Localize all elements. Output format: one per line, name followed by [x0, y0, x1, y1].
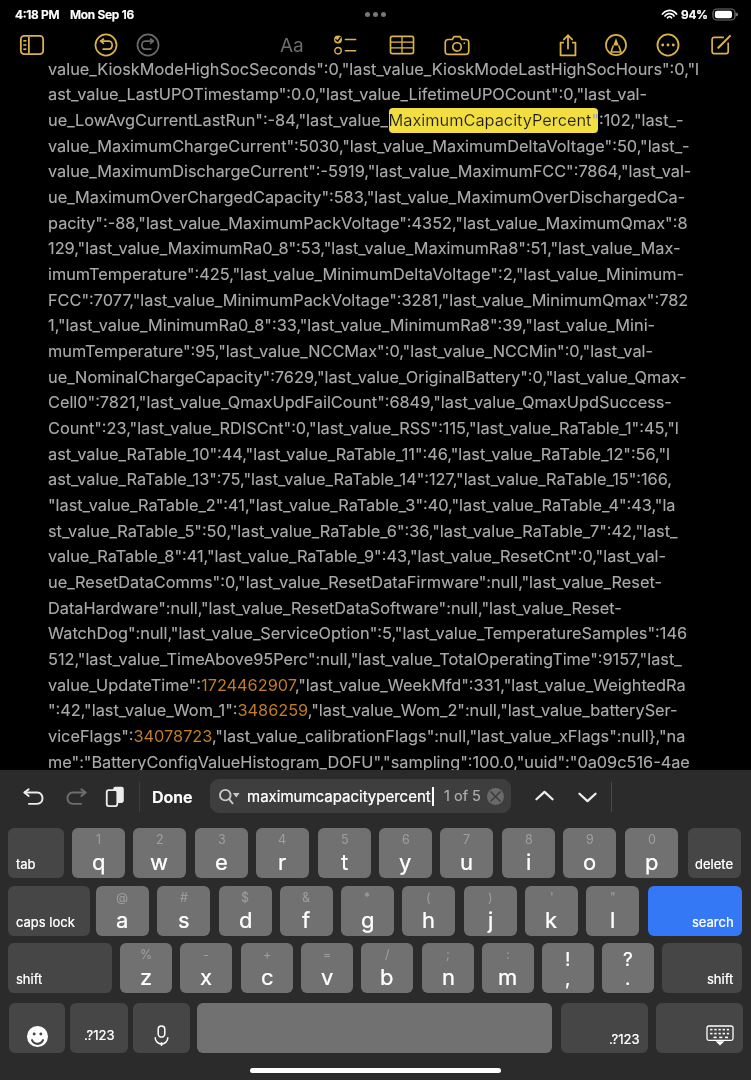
- staticText: k: [545, 907, 558, 934]
- button[interactable]: 2: [133, 828, 186, 878]
- staticText: %: [140, 947, 153, 962]
- button[interactable]: 0: [625, 828, 678, 878]
- staticText: Mon Sep 16: [70, 7, 134, 22]
- staticText: search: [692, 914, 734, 930]
- button[interactable]: maximumcapacitypercent: [210, 779, 511, 813]
- button[interactable]: 1: [72, 828, 125, 878]
- staticText: .: [625, 967, 631, 990]
- button[interactable]: /: [361, 943, 413, 993]
- button[interactable]: .?123: [70, 1003, 128, 1053]
- button[interactable]: kb: [656, 1003, 743, 1053]
- staticText: 0: [648, 832, 656, 847]
- button[interactable]: +: [241, 943, 293, 993]
- staticText: 1,"last_value_MinimumRa0_8":33,"last_val…: [48, 315, 656, 335]
- button[interactable]: 7: [440, 828, 493, 878]
- button[interactable]: More: [651, 28, 685, 62]
- button[interactable]: Format: [274, 29, 310, 61]
- staticText: Aa: [280, 34, 304, 57]
- button[interactable]: mic: [133, 1003, 190, 1053]
- staticText: value_MaximumChargeCurrent":5030,"last_v…: [48, 136, 690, 156]
- staticText: mumTemperature":95,"last_value_NCCMax":0…: [48, 341, 654, 361]
- button[interactable]: delete: [688, 828, 741, 878]
- button[interactable]: ": [586, 886, 639, 936]
- staticText: 6: [402, 832, 410, 847]
- button[interactable]: ?: [602, 943, 654, 993]
- button[interactable]: Done: [146, 780, 198, 812]
- button[interactable]: caps lock: [8, 886, 90, 936]
- staticText: ,: [565, 967, 571, 990]
- staticText: d: [239, 907, 253, 934]
- button[interactable]: !: [542, 943, 594, 993]
- button[interactable]: ;: [422, 943, 474, 993]
- button[interactable]: %: [120, 943, 172, 993]
- button[interactable]: Clear search: [487, 788, 504, 805]
- staticText: :: [506, 947, 510, 962]
- staticText: s: [178, 907, 190, 934]
- staticText: (: [426, 890, 431, 905]
- button[interactable]: 6: [379, 828, 432, 878]
- button[interactable]: Redo: [131, 28, 165, 62]
- staticText: ue_MaximumOverChargedCapacity":583,"last…: [48, 187, 686, 207]
- staticText: ;: [446, 947, 450, 962]
- button[interactable]: $: [219, 886, 272, 936]
- staticText: 1 of 5: [444, 787, 481, 805]
- staticText: -: [203, 947, 209, 962]
- button[interactable]: *: [341, 886, 394, 936]
- button[interactable]: Markup: [599, 28, 633, 62]
- button[interactable]: Undo: [16, 779, 50, 813]
- button[interactable]: Table: [385, 28, 419, 62]
- button[interactable]: tab: [8, 828, 64, 878]
- staticText: @: [116, 890, 129, 905]
- button[interactable]: =: [301, 943, 353, 993]
- staticText: =: [323, 947, 332, 962]
- staticText: pacity":-88,"last_value_MaximumPackVolta…: [48, 213, 688, 233]
- button[interactable]: 5: [318, 828, 371, 878]
- staticText: ": [610, 890, 616, 905]
- button[interactable]: ': [525, 886, 578, 936]
- staticText: 94%: [681, 7, 708, 22]
- staticText: ue_LowAvgCurrentLastRun":-84,"last_value…: [48, 110, 684, 130]
- staticText: shift: [707, 971, 734, 987]
- staticText: g: [361, 907, 375, 934]
- button[interactable]: 8: [502, 828, 555, 878]
- button[interactable]: shift: [662, 943, 742, 993]
- staticText: viceFlags":34078723,"last_value_calibrat…: [48, 726, 686, 746]
- button[interactable]: search: [648, 886, 742, 936]
- staticText: a: [116, 907, 129, 934]
- button[interactable]: shift: [8, 943, 112, 993]
- button[interactable]: 9: [563, 828, 616, 878]
- staticText: 3: [218, 832, 226, 847]
- staticText: Count":23,"last_value_RDISCnt":0,"last_v…: [48, 418, 679, 438]
- staticText: m: [498, 964, 518, 991]
- button[interactable]: :: [482, 943, 534, 993]
- button[interactable]: Paste: [98, 779, 132, 813]
- button[interactable]: Sidebar: [15, 28, 49, 62]
- button[interactable]: Share: [551, 28, 585, 62]
- staticText: delete: [695, 856, 733, 872]
- button[interactable]: emoji: [9, 1003, 65, 1053]
- button[interactable]: Checklist: [328, 28, 362, 62]
- button[interactable]: Redo: [59, 779, 93, 813]
- button[interactable]: #: [157, 886, 210, 936]
- button[interactable]: &: [280, 886, 333, 936]
- button[interactable]: .?123: [561, 1003, 648, 1053]
- staticText: 2: [156, 832, 164, 847]
- button[interactable]: Previous result: [527, 779, 561, 813]
- button[interactable]: 4: [256, 828, 309, 878]
- button[interactable]: -: [180, 943, 232, 993]
- button[interactable]: @: [96, 886, 149, 936]
- staticText: ast_value_LastUPOTimestamp":0.0,"last_va…: [48, 84, 647, 104]
- staticText: ): [488, 890, 493, 905]
- button[interactable]: Camera: [440, 28, 474, 62]
- button[interactable]: 3: [195, 828, 248, 878]
- button[interactable]: (: [402, 886, 455, 936]
- staticText: 1: [96, 832, 102, 847]
- button[interactable]: Compose: [704, 28, 738, 62]
- button[interactable]: Next result: [570, 779, 604, 813]
- button[interactable]: ): [464, 886, 517, 936]
- staticText: 9: [586, 832, 594, 847]
- staticText: $: [241, 890, 250, 905]
- staticText: &: [302, 890, 311, 905]
- button[interactable]: Undo: [89, 28, 123, 62]
